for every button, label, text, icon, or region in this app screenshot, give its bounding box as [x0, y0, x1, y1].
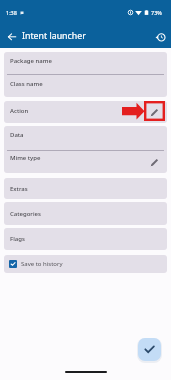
button[interactable]: Flags — [4, 228, 167, 250]
staticText: Mime type — [10, 154, 41, 162]
staticText: Save to history — [21, 260, 63, 268]
staticText: 1:38 — [6, 9, 17, 16]
button[interactable]: Back — [3, 27, 21, 45]
staticText: Extras — [10, 185, 28, 193]
button[interactable]: Package name — [4, 52, 167, 74]
button[interactable]: History — [151, 27, 169, 45]
staticText: Categories — [10, 210, 41, 218]
button[interactable]: Launch intent — [138, 338, 161, 361]
button[interactable]: Extras — [4, 178, 167, 199]
button[interactable]: Edit — [147, 155, 161, 169]
button[interactable]: Categories — [4, 202, 167, 225]
button[interactable]: Action — [4, 101, 167, 123]
staticText: 73% — [151, 9, 162, 16]
staticText: Package name — [10, 57, 52, 65]
staticText: Data — [10, 131, 24, 139]
button[interactable]: Edit — [147, 105, 161, 119]
button[interactable]: Save to history — [4, 255, 167, 273]
staticText: Intent launcher — [22, 30, 86, 42]
staticText: Class name — [10, 80, 43, 88]
staticText: Flags — [10, 235, 25, 243]
staticText: Action — [10, 107, 29, 115]
button[interactable]: Class name — [4, 75, 167, 97]
button[interactable]: Mime type — [4, 151, 167, 173]
button[interactable]: Data — [4, 126, 167, 150]
